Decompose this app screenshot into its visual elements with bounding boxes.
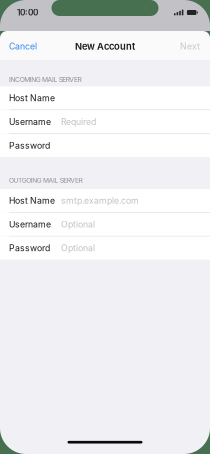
staticText: Optional: [61, 219, 95, 230]
staticText: Optional: [61, 243, 95, 253]
staticText: Username: [9, 117, 51, 127]
staticText: Next: [180, 41, 200, 51]
staticText: INCOMING MAIL SERVER: [9, 76, 81, 84]
button[interactable]: Username: [0, 213, 210, 236]
staticText: smtp.example.com: [61, 195, 139, 206]
staticText: Host Name: [9, 195, 55, 206]
staticText: Password: [9, 140, 50, 151]
button[interactable]: Password: [0, 134, 210, 157]
staticText: Host Name: [9, 93, 55, 103]
button[interactable]: Next: [171, 31, 210, 60]
button[interactable]: Host Name: [0, 189, 210, 212]
staticText: New Account: [75, 41, 135, 52]
staticText: Required: [61, 117, 96, 127]
staticText: OUTGOING MAIL SERVER: [9, 176, 82, 184]
button[interactable]: Host Name: [0, 87, 210, 110]
staticText: Cancel: [9, 41, 37, 51]
staticText: 10:00: [17, 7, 38, 17]
button[interactable]: Username: [0, 110, 210, 133]
button[interactable]: Cancel: [0, 31, 46, 60]
staticText: Username: [9, 219, 51, 230]
button[interactable]: Password: [0, 237, 210, 260]
staticText: Password: [9, 243, 50, 253]
